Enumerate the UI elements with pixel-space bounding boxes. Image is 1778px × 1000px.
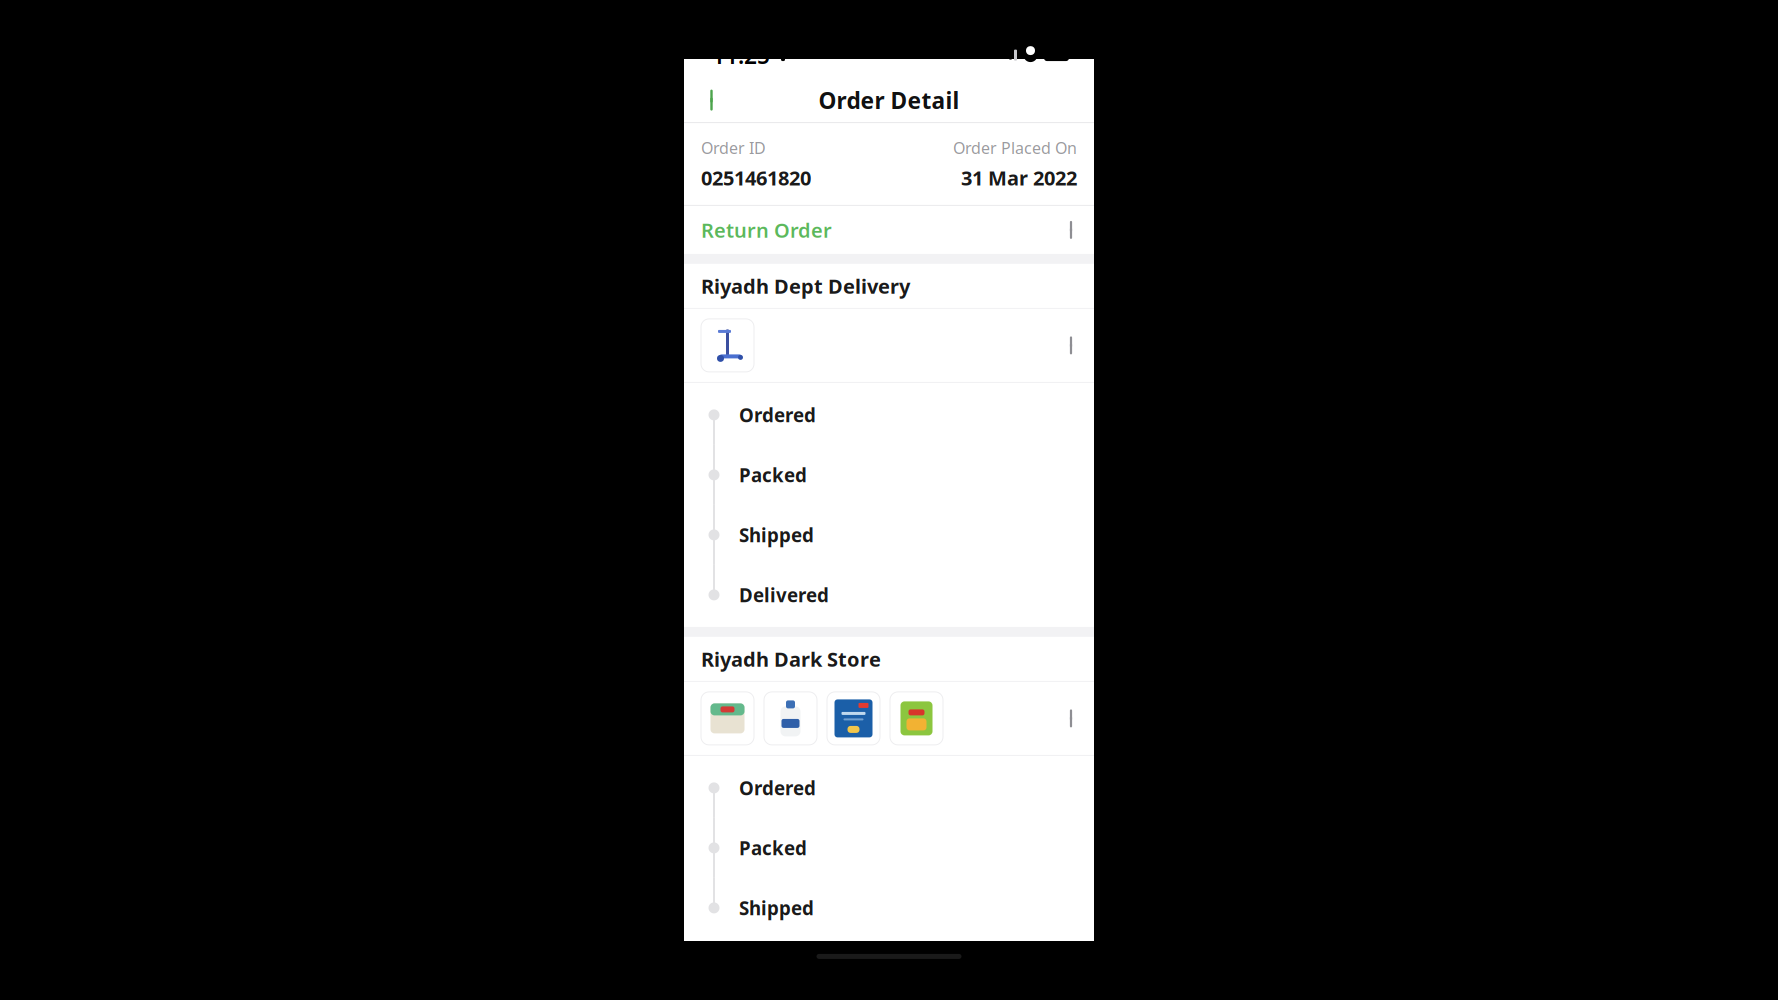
staticText: 0251461820 bbox=[701, 164, 811, 191]
staticText: Order ID bbox=[701, 137, 766, 158]
staticText: Shipped bbox=[739, 522, 814, 547]
staticText: Ordered bbox=[739, 402, 816, 427]
button[interactable] bbox=[684, 309, 1094, 382]
staticText: Riyadh Dept Delivery bbox=[701, 273, 910, 299]
staticText: Return Order bbox=[701, 217, 832, 243]
staticText: 11:25 bbox=[712, 40, 770, 70]
button[interactable]: Return Order bbox=[684, 206, 1094, 254]
staticText: Riyadh Dark Store bbox=[701, 646, 881, 672]
button[interactable] bbox=[684, 682, 1094, 755]
staticText: Delivered bbox=[739, 582, 829, 607]
staticText: 31 Mar 2022 bbox=[961, 164, 1077, 191]
staticText: Order Placed On bbox=[953, 137, 1077, 158]
staticText: Shipped bbox=[739, 895, 814, 920]
staticText: Packed bbox=[739, 835, 807, 860]
staticText: Ordered bbox=[739, 775, 816, 800]
staticText: Packed bbox=[739, 462, 807, 487]
button[interactable]: Back bbox=[692, 78, 736, 122]
staticText: Order Detail bbox=[818, 85, 959, 115]
